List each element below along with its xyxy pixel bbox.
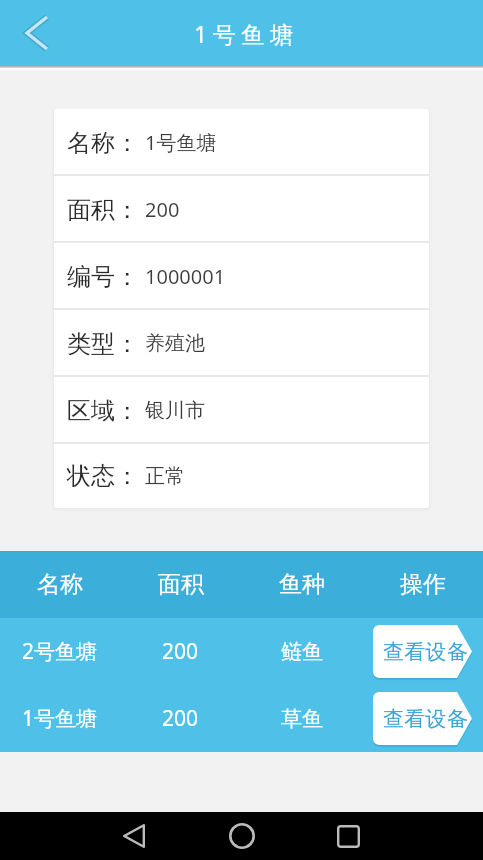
button[interactable]: 名称： bbox=[54, 109, 429, 176]
button[interactable]: 名称 bbox=[0, 551, 120, 618]
button[interactable]: Recents bbox=[322, 812, 375, 860]
button[interactable]: 鱼种 bbox=[241, 551, 362, 618]
staticText: 1号鱼塘 bbox=[145, 129, 217, 156]
staticText: 鲢鱼 bbox=[281, 639, 323, 665]
button[interactable]: 面积 bbox=[120, 551, 241, 618]
button[interactable]: 类型： bbox=[54, 310, 429, 377]
staticText: 操作 bbox=[400, 570, 446, 599]
staticText: 编号： bbox=[67, 262, 139, 292]
staticText: 查看设备 bbox=[383, 706, 469, 732]
button[interactable]: 区域： bbox=[54, 377, 429, 444]
button[interactable]: 操作 bbox=[362, 551, 483, 618]
staticText: 类型： bbox=[67, 329, 139, 359]
button[interactable]: Home bbox=[215, 812, 268, 860]
button[interactable]: 查看设备 bbox=[373, 625, 472, 678]
button[interactable]: Back bbox=[107, 812, 160, 860]
staticText: 面积： bbox=[67, 195, 139, 225]
staticText: 2号鱼塘 bbox=[22, 637, 98, 666]
staticText: 名称： bbox=[67, 128, 139, 158]
staticText: 鱼种 bbox=[279, 570, 325, 599]
staticText: 200 bbox=[162, 704, 199, 733]
staticText: 养殖池 bbox=[145, 331, 205, 356]
staticText: 银川市 bbox=[145, 398, 205, 423]
staticText: 正常 bbox=[145, 464, 185, 489]
staticText: 草鱼 bbox=[281, 706, 323, 732]
button[interactable]: 查看设备 bbox=[373, 692, 472, 745]
staticText: 200 bbox=[162, 637, 199, 666]
staticText: 1号鱼塘 bbox=[22, 704, 98, 733]
staticText: 面积 bbox=[158, 570, 204, 599]
button[interactable]: Back bbox=[4, 0, 70, 66]
button[interactable]: 状态： bbox=[54, 444, 429, 508]
staticText: 状态： bbox=[67, 461, 139, 491]
staticText: 名称 bbox=[37, 570, 83, 599]
staticText: 1号鱼塘 bbox=[194, 18, 299, 49]
button[interactable]: 面积： bbox=[54, 176, 429, 243]
button[interactable]: 编号： bbox=[54, 243, 429, 310]
staticText: 区域： bbox=[67, 396, 139, 426]
staticText: 查看设备 bbox=[383, 639, 469, 665]
staticText: 1000001 bbox=[145, 263, 226, 290]
staticText: 200 bbox=[145, 196, 180, 223]
